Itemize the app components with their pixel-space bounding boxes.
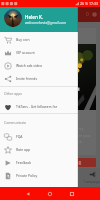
staticText: Feedback (16, 160, 32, 165)
button[interactable]: Home (47, 191, 53, 197)
button[interactable]: VIP account (0, 46, 78, 59)
button[interactable]: Buy coin (0, 33, 78, 46)
staticText: Buy coin (16, 37, 30, 42)
button[interactable]: Watch ads video (0, 59, 78, 72)
staticText: unt you (76, 133, 91, 138)
staticText: welcomehevia@gmail.com (25, 20, 67, 24)
staticText: Watch ads video (16, 63, 42, 68)
staticText: VIP account (16, 50, 35, 55)
staticText: s YT, (76, 127, 85, 132)
staticText: Communicate (4, 120, 27, 125)
button[interactable]: TikTans - Get followers for (0, 100, 78, 113)
button[interactable]: Recents (69, 191, 75, 197)
staticText: me. (76, 139, 84, 144)
button[interactable]: Back (25, 191, 31, 197)
button[interactable]: FQA (0, 130, 78, 143)
staticText: Private Policy (16, 173, 38, 178)
staticText: 0 (86, 11, 89, 18)
staticText: FQA (16, 134, 23, 139)
staticText: Invite friends (16, 76, 38, 81)
button[interactable]: Rate app (0, 143, 78, 156)
staticText: OR (75, 160, 82, 166)
staticText: TikTans - Get followers for (16, 104, 58, 109)
button[interactable]: Feedback (0, 156, 78, 169)
staticText: 26 % 17:33 (80, 1, 99, 6)
staticText: Campaign (84, 179, 100, 184)
button[interactable]: Invite friends (0, 72, 78, 85)
staticText: Helen K. (25, 14, 44, 20)
staticText: Other apps (4, 91, 22, 96)
button[interactable]: Private Policy (0, 169, 78, 182)
staticText: Rate app (16, 147, 31, 152)
